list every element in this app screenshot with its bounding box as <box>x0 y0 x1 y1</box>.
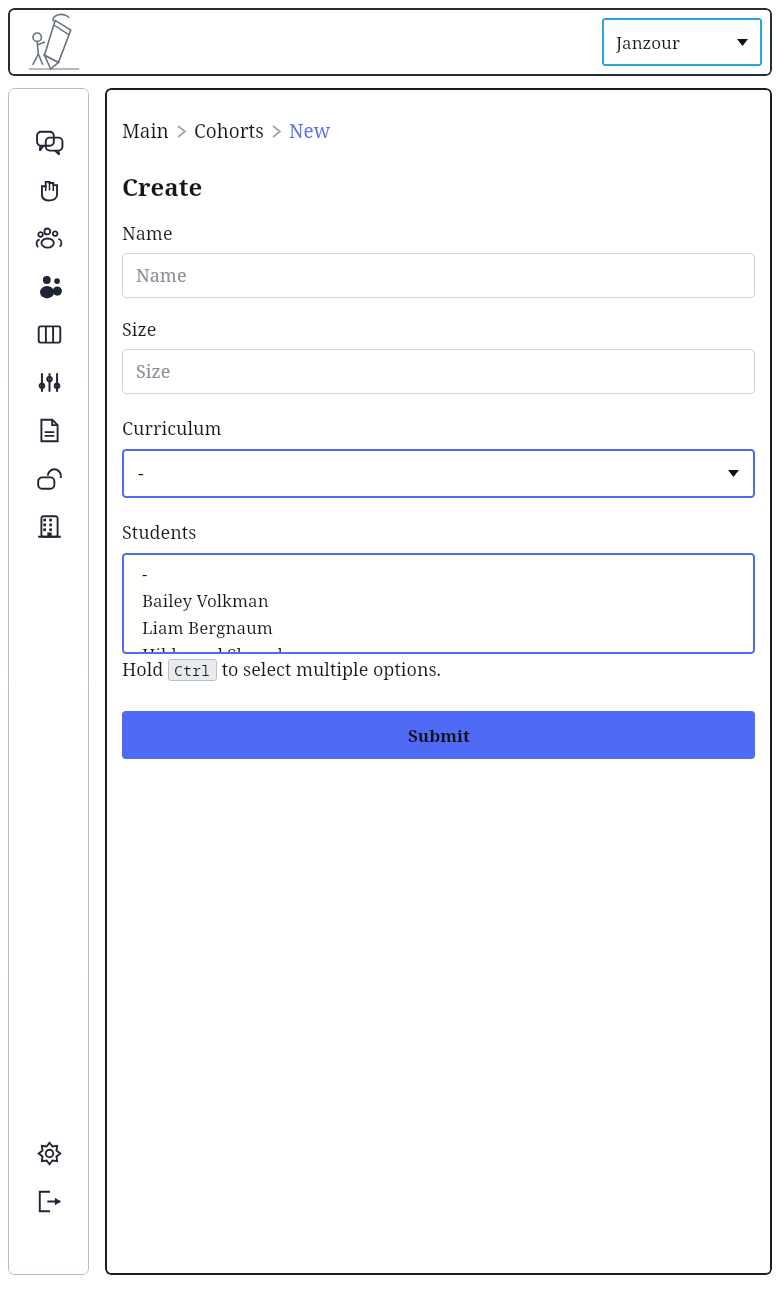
button[interactable]: Cohorts <box>194 118 264 144</box>
staticText: Curriculum <box>122 416 222 441</box>
button[interactable]: Log out <box>25 1177 73 1225</box>
staticText: Bailey Volkman <box>142 589 269 612</box>
button[interactable]: Name <box>122 253 755 298</box>
button[interactable]: Students <box>25 262 73 310</box>
button[interactable]: Size <box>122 349 755 394</box>
button[interactable]: Permissions <box>25 454 73 502</box>
other: Logo <box>26 12 82 72</box>
staticText: - <box>138 461 144 486</box>
button[interactable]: Messages <box>25 118 73 166</box>
staticText: Liam Bergnaum <box>142 616 273 639</box>
button[interactable]: Groups <box>25 214 73 262</box>
button[interactable]: - <box>122 449 755 498</box>
button[interactable]: Settings <box>25 1129 73 1177</box>
button[interactable]: Attendance <box>25 166 73 214</box>
button[interactable]: Janzour Aljadid <box>602 18 762 66</box>
button[interactable]: Submit <box>122 711 755 759</box>
staticText: to select multiple options. <box>217 657 442 682</box>
button[interactable]: Settings sliders <box>25 358 73 406</box>
staticText: Size <box>136 359 171 384</box>
staticText: Janzour Aljadid <box>616 31 731 54</box>
staticText: Hildegard Shanahan <box>142 643 309 654</box>
button[interactable]: New <box>289 118 331 144</box>
staticText: Submit <box>408 724 470 747</box>
button[interactable]: Main <box>122 118 169 144</box>
button[interactable]: - <box>122 553 755 654</box>
staticText: Size <box>122 317 157 342</box>
button[interactable]: Documents <box>25 406 73 454</box>
staticText: Hold <box>122 657 168 682</box>
staticText: Name <box>136 263 187 288</box>
staticText: Ctrl <box>174 660 211 680</box>
staticText: Create <box>122 170 203 203</box>
staticText: Name <box>122 221 173 246</box>
staticText: Students <box>122 520 197 545</box>
button[interactable]: Columns <box>25 310 73 358</box>
staticText: - <box>142 562 148 585</box>
button[interactable]: Organization <box>25 502 73 550</box>
